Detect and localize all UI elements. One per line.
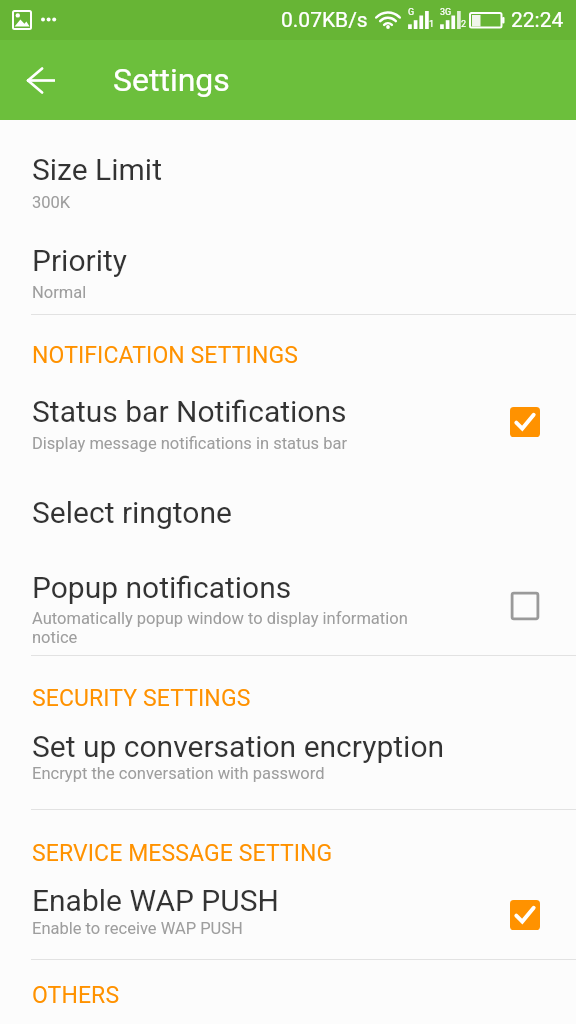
button[interactable]: Enable WAP PUSH (0, 870, 576, 958)
staticText: Size Limit (32, 152, 162, 187)
button[interactable]: OTHERS (0, 972, 576, 1019)
staticText: Priority (32, 243, 127, 278)
button[interactable]: Status bar Notifications (0, 380, 576, 470)
button[interactable]: SERVICE MESSAGE SETTING (0, 830, 576, 877)
staticText: NOTIFICATION SETTINGS (32, 342, 298, 369)
staticText: Display message notifications in status … (32, 434, 347, 453)
staticText: Status bar Notifications (32, 394, 347, 429)
staticText: 1 (429, 19, 435, 30)
button[interactable]: Select ringtone (0, 472, 576, 548)
staticText: OTHERS (32, 982, 120, 1009)
staticText: 0.07KB/s (281, 8, 368, 33)
staticText: Settings (113, 61, 230, 99)
staticText: 2 (461, 19, 467, 30)
staticText: 300K (32, 193, 71, 212)
button[interactable]: Popup notifications (0, 550, 576, 654)
button[interactable]: Priority (0, 222, 576, 313)
staticText: G (408, 7, 415, 18)
staticText: Enable to receive WAP PUSH (32, 919, 243, 938)
button[interactable]: Unchecked (504, 585, 546, 627)
staticText: SECURITY SETTINGS (32, 685, 251, 712)
button[interactable]: Set up conversation encryption (0, 716, 576, 808)
button[interactable]: Back (13, 52, 69, 108)
staticText: Set up conversation encryption (32, 729, 445, 764)
staticText: SERVICE MESSAGE SETTING (32, 840, 333, 867)
button[interactable]: NOTIFICATION SETTINGS (0, 332, 576, 379)
staticText: Encrypt the conversation with password (32, 764, 325, 783)
button[interactable]: SECURITY SETTINGS (0, 675, 576, 722)
staticText: Normal (32, 283, 87, 302)
button[interactable]: Checked (504, 401, 546, 443)
staticText: 3G (440, 7, 452, 18)
staticText: Automatically popup window to display in… (32, 609, 408, 647)
staticText: Select ringtone (32, 495, 232, 530)
button[interactable]: Size Limit (0, 130, 576, 218)
staticText: Enable WAP PUSH (32, 883, 279, 918)
staticText: 22:24 (511, 8, 564, 33)
staticText: Popup notifications (32, 570, 292, 605)
button[interactable]: Checked (504, 894, 546, 936)
